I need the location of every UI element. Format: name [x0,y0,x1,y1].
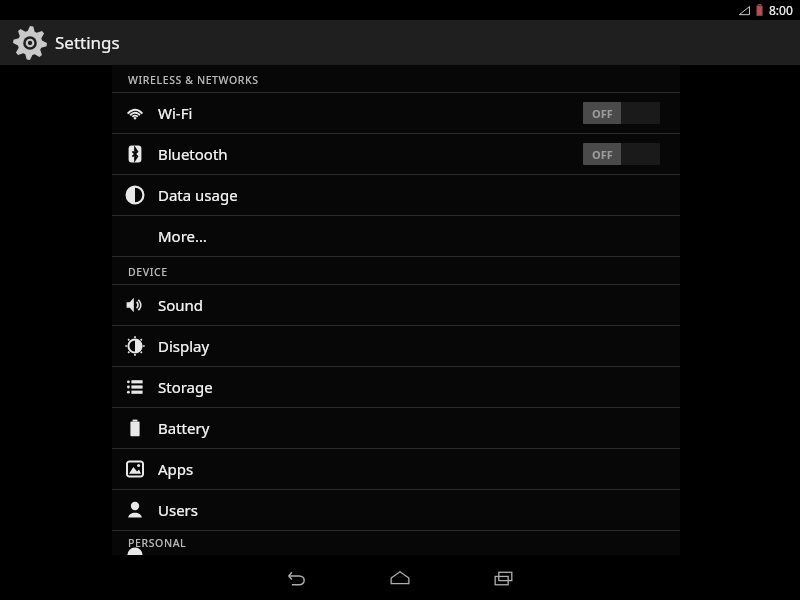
button[interactable]: Back [267,558,325,598]
button[interactable]: Display [112,326,680,366]
staticText: Settings [55,31,120,54]
button[interactable]: Settings [0,20,800,65]
button[interactable]: Battery [112,408,680,448]
staticText: Battery [158,418,210,438]
button[interactable]: Recent apps [475,558,533,598]
staticText: DEVICE [128,265,168,279]
staticText: WIRELESS & NETWORKS [128,73,259,87]
staticText: Sound [158,295,204,315]
staticText: OFF [592,147,613,162]
staticText: More… [158,226,207,246]
staticText: Users [158,500,198,520]
staticText: 8:00 [769,2,793,18]
button[interactable]: Bluetooth [112,134,680,174]
button[interactable]: More… [112,216,680,256]
staticText: Data usage [158,185,238,205]
button[interactable]: Data usage [112,175,680,215]
staticText: Display [158,336,210,356]
button[interactable]: Users [112,490,680,530]
staticText: PERSONAL [128,536,187,550]
staticText: OFF [592,106,613,121]
staticText: Storage [158,377,213,397]
staticText: Wi-Fi [158,103,193,123]
button[interactable]: Storage [112,367,680,407]
staticText: Bluetooth [158,144,228,164]
button[interactable]: Toggle, off [583,143,660,165]
button[interactable]: Sound [112,285,680,325]
button[interactable]: Wi-Fi [112,93,680,133]
staticText: Apps [158,459,194,479]
button[interactable]: Toggle, off [583,102,660,124]
button[interactable]: Apps [112,449,680,489]
button[interactable]: Home [371,558,429,598]
